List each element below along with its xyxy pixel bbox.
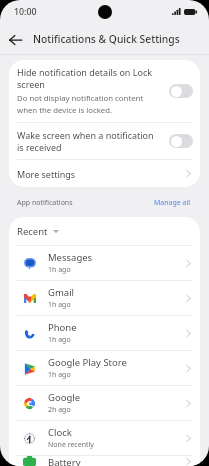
staticText: Recent xyxy=(17,225,48,238)
button[interactable]: Messages xyxy=(9,246,200,280)
staticText: Wake screen when a notification is recei… xyxy=(17,129,160,153)
staticText: 1h ago xyxy=(48,335,71,345)
button[interactable]: Hide notification details on Lock screen xyxy=(9,60,200,122)
staticText: Manage all xyxy=(154,198,191,208)
staticText: 1h ago xyxy=(48,370,71,380)
button[interactable]: Google Play Store xyxy=(9,351,200,385)
staticText: Battery xyxy=(48,456,81,466)
staticText: 2h ago xyxy=(48,405,71,415)
staticText: Do not display notification content when… xyxy=(17,93,160,116)
button[interactable]: More settings xyxy=(9,160,200,187)
staticText: 1h ago xyxy=(48,265,71,275)
staticText: Notifications & Quick Settings xyxy=(33,32,180,46)
button[interactable]: Manage all xyxy=(154,198,191,208)
button[interactable]: Toggle xyxy=(169,134,193,148)
staticText: Clock xyxy=(48,426,72,439)
button[interactable]: Back xyxy=(4,28,27,51)
button[interactable]: Gmail xyxy=(9,281,200,315)
staticText: 10:00 xyxy=(14,6,37,18)
staticText: Google Play Store xyxy=(48,356,127,369)
button[interactable]: Toggle xyxy=(169,84,193,98)
staticText: Hide notification details on Lock screen xyxy=(17,66,160,90)
button[interactable]: Phone xyxy=(9,316,200,350)
staticText: Gmail xyxy=(48,286,75,299)
staticText: None recently xyxy=(48,440,94,450)
button[interactable]: Recent xyxy=(9,217,200,245)
button[interactable]: Clock xyxy=(9,421,200,455)
staticText: More settings xyxy=(17,168,186,180)
staticText: Google xyxy=(48,391,81,404)
staticText: Messages xyxy=(48,251,93,264)
button[interactable]: Google xyxy=(9,386,200,420)
staticText: 1h ago xyxy=(48,300,71,310)
staticText: App notifications xyxy=(17,198,154,208)
staticText: Phone xyxy=(48,321,77,334)
button[interactable]: Wake screen when a notification is recei… xyxy=(9,123,200,159)
button[interactable]: Battery xyxy=(9,456,200,466)
